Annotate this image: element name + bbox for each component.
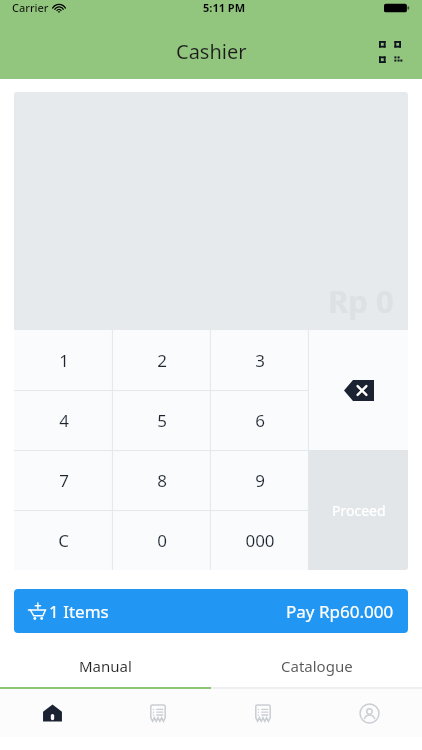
- button[interactable]: 9: [211, 450, 309, 510]
- button[interactable]: Orders: [105, 689, 210, 737]
- staticText: 3: [255, 349, 265, 372]
- button[interactable]: 6: [211, 390, 309, 450]
- staticText: Manual: [79, 656, 132, 676]
- button[interactable]: 1: [14, 330, 113, 390]
- button[interactable]: Backspace: [309, 330, 408, 450]
- staticText: 5:11 PM: [203, 0, 246, 15]
- button[interactable]: Manual: [0, 645, 211, 687]
- button[interactable]: Scan QR code: [368, 30, 412, 74]
- button[interactable]: Profile: [316, 689, 422, 737]
- staticText: 1 Items: [49, 600, 109, 623]
- staticText: Cashier: [176, 38, 247, 65]
- button[interactable]: 5: [113, 390, 211, 450]
- button[interactable]: 3: [211, 330, 309, 390]
- staticText: 7: [59, 469, 69, 492]
- button[interactable]: 2: [113, 330, 211, 390]
- staticText: Rp 0: [328, 280, 394, 322]
- staticText: 1: [59, 349, 69, 372]
- staticText: Pay Rp60.000: [286, 600, 394, 623]
- staticText: 2: [157, 349, 167, 372]
- button[interactable]: 4: [14, 390, 113, 450]
- button[interactable]: Catalogue: [211, 645, 422, 687]
- staticText: 0: [157, 529, 167, 552]
- staticText: 000: [245, 529, 275, 552]
- button[interactable]: 000: [211, 510, 309, 570]
- button[interactable]: 8: [113, 450, 211, 510]
- button[interactable]: Home: [0, 689, 105, 737]
- staticText: C: [58, 529, 69, 552]
- button[interactable]: 0: [113, 510, 211, 570]
- button[interactable]: Proceed: [309, 450, 408, 570]
- staticText: 5: [157, 409, 167, 432]
- staticText: 8: [157, 469, 167, 492]
- staticText: Catalogue: [281, 656, 353, 676]
- staticText: 6: [255, 409, 265, 432]
- staticText: Proceed: [332, 501, 386, 520]
- button[interactable]: Reports: [210, 689, 316, 737]
- button[interactable]: 7: [14, 450, 113, 510]
- button[interactable]: 1 Items: [14, 589, 408, 633]
- button[interactable]: C: [14, 510, 113, 570]
- staticText: 4: [59, 409, 69, 432]
- staticText: 9: [255, 469, 265, 492]
- staticText: Carrier: [12, 0, 49, 15]
